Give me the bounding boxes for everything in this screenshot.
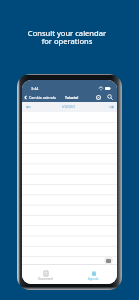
staticText: Cambia azienda	[29, 95, 56, 100]
button[interactable]: Documenti	[36, 271, 55, 281]
staticText: Agenda	[88, 277, 99, 281]
staticText: Documenti	[38, 277, 53, 281]
button[interactable]: Search	[104, 92, 115, 102]
staticText: Consult your calendar for operations	[8, 28, 126, 46]
button[interactable]: New operation	[104, 256, 113, 265]
button[interactable]: Tutorial	[64, 95, 80, 100]
button[interactable]: Previous day	[22, 102, 34, 112]
button[interactable]: Agenda	[86, 271, 101, 281]
button[interactable]: Cambia azienda	[22, 95, 57, 100]
button[interactable]: Next day	[105, 102, 117, 112]
staticText: 6/04/2021	[62, 105, 76, 109]
button[interactable]: 6/04/2021	[60, 105, 78, 109]
staticText: Tutorial	[65, 95, 79, 100]
button[interactable]: Settings	[93, 92, 104, 102]
staticText: 3:44	[31, 86, 39, 91]
